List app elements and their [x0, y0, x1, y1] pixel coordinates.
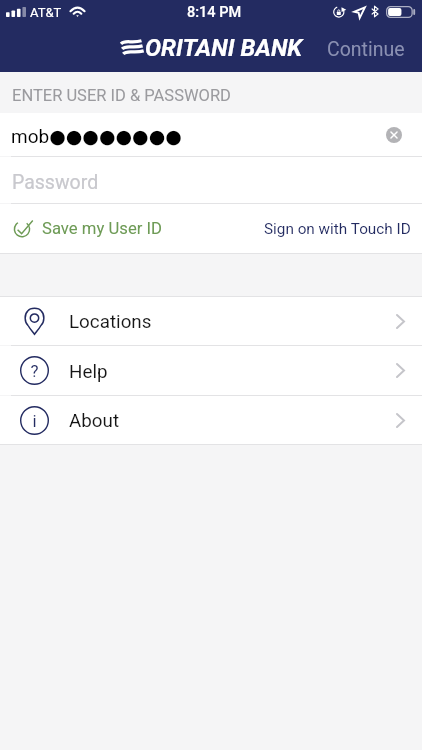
staticText: Password	[12, 171, 99, 194]
staticText: AT&T	[30, 5, 62, 20]
staticText: ENTER USER ID & PASSWORD	[12, 86, 231, 105]
staticText: About	[69, 410, 120, 432]
button[interactable]: Save my User ID	[0, 213, 169, 245]
button[interactable]: ?	[0, 346, 422, 395]
staticText: mob●●●●●●●●	[11, 125, 182, 147]
staticText: 8:14 PM	[187, 4, 242, 21]
button[interactable]: Locations	[0, 297, 422, 345]
staticText: Continue	[327, 38, 405, 61]
staticText: Sign on with Touch ID	[264, 220, 411, 238]
staticText: Save my User ID	[42, 219, 163, 239]
staticText: Locations	[69, 311, 152, 333]
button[interactable]: Sign on with Touch ID	[252, 212, 422, 246]
button[interactable]: i	[0, 396, 422, 444]
button[interactable]: Clear user ID	[381, 122, 407, 148]
staticText: Help	[69, 361, 108, 383]
staticText: i	[32, 411, 37, 431]
staticText: ?	[30, 361, 39, 381]
staticText: ORITANI BANK	[145, 34, 303, 62]
button[interactable]: Continue	[316, 31, 416, 68]
